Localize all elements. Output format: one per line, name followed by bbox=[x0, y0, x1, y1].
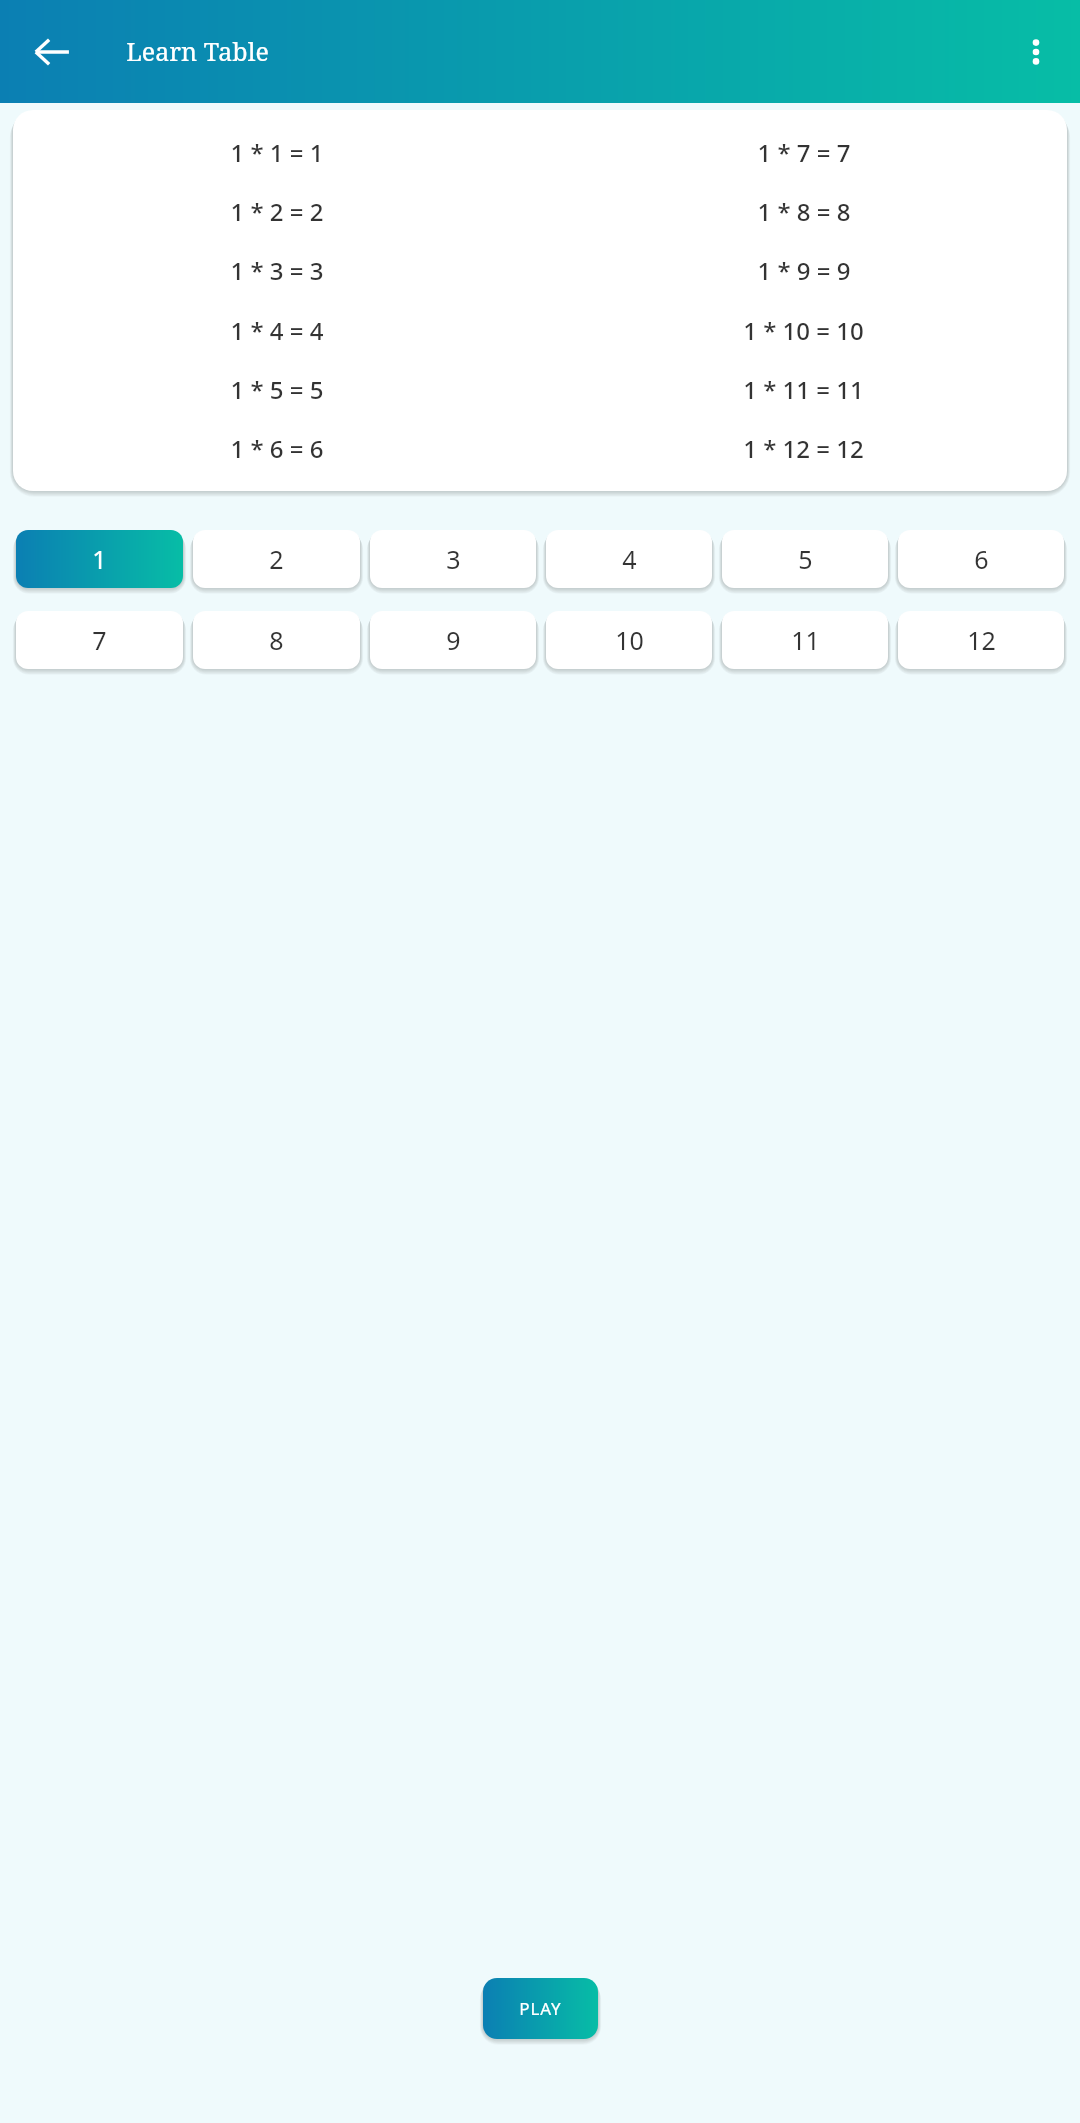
staticText: 1 bbox=[92, 542, 107, 576]
staticText: 5 bbox=[798, 542, 813, 576]
button[interactable]: 5 bbox=[722, 530, 888, 588]
staticText: 12 bbox=[967, 623, 996, 657]
staticText: 2 bbox=[269, 542, 284, 576]
staticText: Learn Table bbox=[126, 34, 269, 68]
staticText: 1 * 6 = 6 bbox=[230, 432, 324, 465]
staticText: 11 bbox=[791, 623, 820, 657]
button[interactable]: Back bbox=[14, 14, 90, 90]
button[interactable]: 2 bbox=[193, 530, 360, 588]
staticText: 1 * 11 = 11 bbox=[743, 373, 864, 406]
staticText: PLAY bbox=[519, 1997, 562, 2020]
staticText: 10 bbox=[615, 623, 644, 657]
button[interactable]: 1 bbox=[16, 530, 183, 588]
staticText: 8 bbox=[269, 623, 284, 657]
staticText: 1 * 1 = 1 bbox=[230, 136, 324, 169]
button[interactable]: 7 bbox=[16, 611, 183, 669]
staticText: 1 * 10 = 10 bbox=[743, 314, 864, 347]
button[interactable]: 11 bbox=[722, 611, 888, 669]
button[interactable]: 9 bbox=[370, 611, 536, 669]
staticText: 6 bbox=[974, 542, 989, 576]
staticText: 4 bbox=[622, 542, 637, 576]
staticText: 7 bbox=[92, 623, 107, 657]
staticText: 9 bbox=[446, 623, 461, 657]
button[interactable]: 4 bbox=[546, 530, 712, 588]
button[interactable]: 6 bbox=[898, 530, 1064, 588]
staticText: 1 * 5 = 5 bbox=[230, 373, 324, 406]
button[interactable]: 10 bbox=[546, 611, 712, 669]
staticText: 1 * 3 = 3 bbox=[230, 254, 324, 287]
staticText: 1 * 8 = 8 bbox=[757, 195, 851, 228]
staticText: 1 * 2 = 2 bbox=[230, 195, 324, 228]
button[interactable]: More options bbox=[1000, 16, 1072, 88]
staticText: 3 bbox=[446, 542, 461, 576]
button[interactable]: 8 bbox=[193, 611, 360, 669]
button[interactable]: PLAY bbox=[483, 1978, 598, 2039]
button[interactable]: 12 bbox=[898, 611, 1064, 669]
staticText: 1 * 4 = 4 bbox=[230, 314, 324, 347]
staticText: 1 * 7 = 7 bbox=[757, 136, 851, 169]
staticText: 1 * 12 = 12 bbox=[743, 432, 864, 465]
staticText: 1 * 9 = 9 bbox=[757, 254, 851, 287]
button[interactable]: 3 bbox=[370, 530, 536, 588]
